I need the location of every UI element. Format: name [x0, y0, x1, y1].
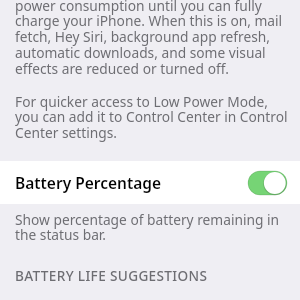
- staticText: BATTERY LIFE SUGGESTIONS: [15, 266, 208, 285]
- staticText: For quicker access to Low Power Mode, yo…: [15, 92, 294, 142]
- button[interactable]: Battery Percentage: [0, 161, 300, 204]
- staticText: power consumption until you can fully ch…: [15, 0, 294, 78]
- button[interactable]: Battery Percentage, on: [248, 171, 287, 195]
- staticText: Battery Percentage: [15, 172, 162, 193]
- staticText: Show percentage of battery remaining in …: [15, 210, 294, 244]
